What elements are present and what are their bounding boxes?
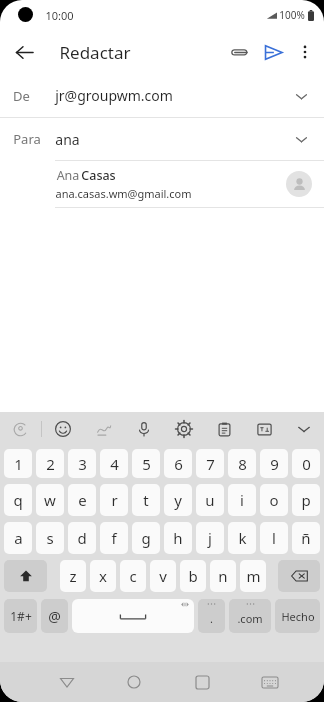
staticText: 3	[78, 454, 87, 474]
button[interactable]: Hecho	[275, 599, 320, 633]
button[interactable]: 2	[36, 449, 64, 478]
button[interactable]: k	[228, 522, 256, 554]
button[interactable]: z	[60, 560, 86, 592]
staticText: m	[246, 566, 261, 586]
button[interactable]: v	[150, 560, 176, 592]
button[interactable]: 1	[4, 449, 32, 478]
button[interactable]: Voz	[124, 412, 164, 446]
staticText: v	[159, 566, 167, 586]
button[interactable]: Mayúsculas	[4, 560, 47, 592]
staticText: Redactar	[59, 41, 131, 64]
button[interactable]: Emoji	[42, 412, 83, 446]
staticText: p	[301, 490, 311, 510]
staticText: 0	[302, 454, 311, 474]
button[interactable]: x	[90, 560, 116, 592]
button[interactable]: Inicio	[100, 662, 168, 702]
staticText: l	[272, 528, 276, 548]
staticText: c	[129, 566, 137, 586]
button[interactable]: De	[0, 74, 324, 117]
button[interactable]: p	[292, 484, 320, 516]
button[interactable]: Cambiar teclado	[236, 662, 304, 702]
button[interactable]: Adjuntar archivo	[222, 35, 256, 69]
button[interactable]: Ocultar teclado	[284, 412, 324, 446]
button[interactable]: u	[196, 484, 224, 516]
button[interactable]: l	[260, 522, 288, 554]
staticText: .com	[237, 611, 263, 626]
button[interactable]: .	[198, 599, 225, 633]
staticText: e	[78, 490, 87, 510]
staticText: j	[208, 528, 212, 548]
button[interactable]: Atrás	[7, 35, 41, 69]
button[interactable]: Expandir	[291, 86, 311, 106]
staticText: z	[69, 566, 77, 586]
button[interactable]: Escritura a mano	[83, 412, 124, 446]
button[interactable]: m	[240, 560, 266, 592]
staticText: d	[77, 528, 87, 548]
staticText: 1	[14, 454, 23, 474]
button[interactable]: s	[36, 522, 64, 554]
button[interactable]: q	[4, 484, 32, 516]
button[interactable]: 7	[196, 449, 224, 478]
button[interactable]: 0	[292, 449, 320, 478]
button[interactable]: Ajustes	[164, 412, 204, 446]
button[interactable]: f	[100, 522, 128, 554]
button[interactable]: Más opciones	[290, 37, 320, 67]
button[interactable]: 8	[228, 449, 256, 478]
button[interactable]: i	[228, 484, 256, 516]
staticText: De	[13, 87, 30, 105]
button[interactable]: d	[68, 522, 96, 554]
staticText: x	[99, 566, 107, 586]
button[interactable]: .com	[229, 599, 271, 633]
button[interactable]: a	[4, 522, 32, 554]
staticText: 2	[46, 454, 55, 474]
staticText: Ana	[55, 167, 81, 184]
staticText: 4	[110, 454, 119, 474]
staticText: t	[143, 490, 149, 510]
staticText: ñ	[301, 528, 311, 548]
button[interactable]: Expandir	[291, 129, 311, 149]
button[interactable]: n	[210, 560, 236, 592]
staticText: b	[188, 566, 198, 586]
staticText: w	[44, 490, 56, 510]
staticText: 7	[206, 454, 215, 474]
staticText: s	[46, 528, 54, 548]
button[interactable]: 6	[164, 449, 192, 478]
button[interactable]: b	[180, 560, 206, 592]
button[interactable]: t	[132, 484, 160, 516]
staticText: ana	[55, 130, 80, 149]
button[interactable]: o	[260, 484, 288, 516]
button[interactable]: 5	[132, 449, 160, 478]
button[interactable]: 3	[68, 449, 96, 478]
staticText: a	[14, 528, 23, 548]
button[interactable]: Traducción de texto	[244, 412, 284, 446]
button[interactable]: Ana	[0, 161, 324, 207]
staticText: f	[111, 528, 117, 548]
button[interactable]: 9	[260, 449, 288, 478]
button[interactable]: Para	[0, 118, 324, 160]
button[interactable]: h	[164, 522, 192, 554]
button[interactable]: ñ	[292, 522, 320, 554]
staticText: Para	[13, 130, 41, 148]
button[interactable]: g	[132, 522, 160, 554]
button[interactable]: Espacio	[72, 599, 194, 633]
button[interactable]: e	[68, 484, 96, 516]
button[interactable]: Portapapeles	[204, 412, 244, 446]
button[interactable]: @	[41, 599, 68, 633]
button[interactable]: Enviar	[256, 35, 290, 69]
button[interactable]: j	[196, 522, 224, 554]
button[interactable]: Borrar	[278, 560, 320, 592]
button[interactable]: y	[164, 484, 192, 516]
button[interactable]: Traducir	[0, 412, 41, 446]
staticText: Hecho	[281, 609, 315, 624]
staticText: 8	[238, 454, 247, 474]
button[interactable]: w	[36, 484, 64, 516]
staticText: jr@groupwm.com	[55, 86, 173, 105]
button[interactable]: 4	[100, 449, 128, 478]
button[interactable]: Aplicaciones recientes	[168, 662, 236, 702]
button[interactable]: 1#+	[4, 599, 37, 633]
staticText: g	[141, 528, 151, 548]
button[interactable]: r	[100, 484, 128, 516]
staticText: r	[111, 490, 118, 510]
button[interactable]: Atrás	[33, 662, 100, 702]
button[interactable]: c	[120, 560, 146, 592]
